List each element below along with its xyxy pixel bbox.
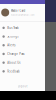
staticText: About Us — [7, 61, 20, 64]
staticText: Feedback — [7, 69, 19, 73]
button[interactable]: About Us — [0, 58, 45, 67]
button[interactable]: Change Pass — [0, 50, 45, 58]
staticText: Logout — [17, 84, 27, 88]
staticText: mastercard@gmail.com — [11, 13, 35, 16]
button[interactable]: Settings — [0, 32, 45, 41]
button[interactable]: Bus Track — [0, 23, 45, 32]
staticText: Bus Track — [7, 26, 18, 30]
staticText: Change Pass — [7, 52, 24, 56]
button[interactable]: Feedback — [0, 67, 45, 76]
staticText: Master Card — [11, 9, 26, 12]
button[interactable]: Alerts — [0, 41, 45, 50]
staticText: Settings — [7, 35, 18, 38]
staticText: Alerts — [7, 43, 15, 47]
